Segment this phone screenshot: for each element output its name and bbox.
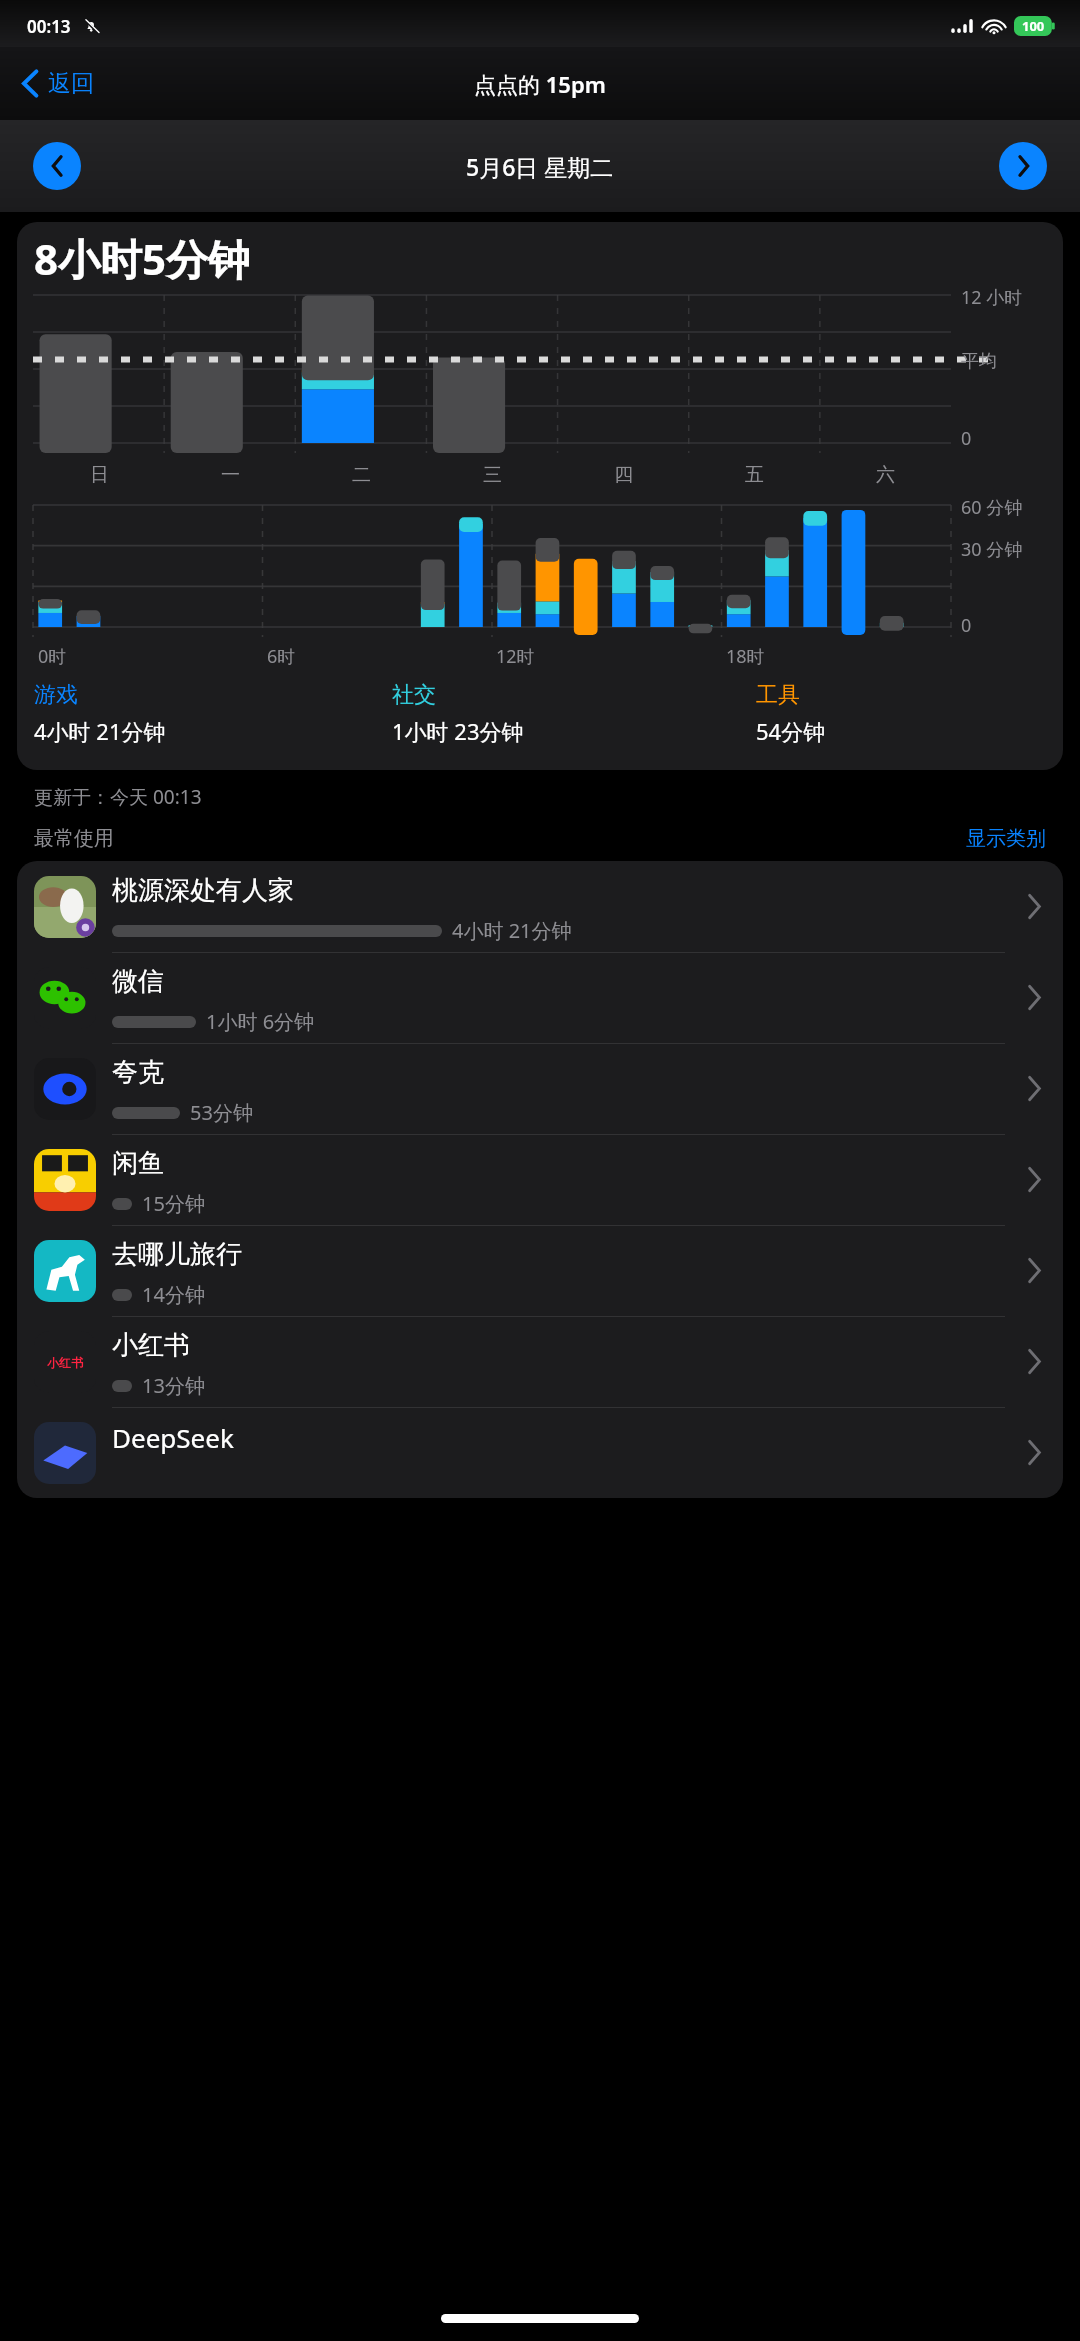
button[interactable]: Previous day xyxy=(33,142,81,190)
staticText: 游戏 xyxy=(34,681,78,709)
staticText: 6时 xyxy=(267,644,296,669)
staticText: 工具 xyxy=(756,681,800,709)
button[interactable]: 闲鱼 xyxy=(17,1134,1063,1225)
staticText: 12 小时 xyxy=(961,285,1023,310)
button[interactable]: Next day xyxy=(999,142,1047,190)
button[interactable]: DeepSeek xyxy=(17,1407,1063,1498)
button[interactable]: 工具 xyxy=(756,681,1046,746)
staticText: 六 xyxy=(876,463,895,487)
staticText: 30 分钟 xyxy=(961,537,1023,562)
staticText: 夸克 xyxy=(112,1056,164,1089)
staticText: 社交 xyxy=(392,681,436,709)
staticText: 13分钟 xyxy=(142,1372,205,1399)
staticText: 1小时 6分钟 xyxy=(206,1008,315,1035)
staticText: 0 xyxy=(961,613,972,638)
button[interactable]: 微信 xyxy=(17,952,1063,1043)
staticText: 00:13 xyxy=(27,15,71,38)
staticText: 53分钟 xyxy=(190,1099,253,1126)
staticText: 100 xyxy=(1022,17,1045,35)
staticText: 闲鱼 xyxy=(112,1147,164,1180)
button[interactable]: 桃源深处有人家 xyxy=(17,861,1063,952)
staticText: 60 分钟 xyxy=(961,495,1023,520)
staticText: 点点的 15pm xyxy=(474,69,606,99)
staticText: 12时 xyxy=(496,644,535,669)
staticText: 18时 xyxy=(726,644,765,669)
staticText: 14分钟 xyxy=(142,1281,205,1308)
staticText: 桃源深处有人家 xyxy=(112,874,294,907)
staticText: 一 xyxy=(221,463,240,487)
staticText: 更新于：今天 00:13 xyxy=(34,784,202,810)
button[interactable]: 夸克 xyxy=(17,1043,1063,1134)
staticText: 小红书 xyxy=(47,1355,83,1370)
button[interactable]: 游戏 xyxy=(34,681,392,746)
staticText: 15分钟 xyxy=(142,1190,205,1217)
staticText: 4小时 21分钟 xyxy=(452,917,572,944)
staticText: 5月6日 星期二 xyxy=(466,151,614,182)
staticText: 1小时 23分钟 xyxy=(392,716,524,746)
staticText: 8小时5分钟 xyxy=(34,230,251,287)
button[interactable]: 返回 xyxy=(14,61,102,106)
staticText: DeepSeek xyxy=(112,1420,234,1455)
staticText: 4小时 21分钟 xyxy=(34,716,166,746)
staticText: 最常使用 xyxy=(34,826,114,851)
staticText: 日 xyxy=(90,463,109,487)
staticText: 平均 xyxy=(961,350,997,373)
staticText: 返回 xyxy=(48,69,94,98)
staticText: 五 xyxy=(745,463,764,487)
button[interactable]: 去哪儿旅行 xyxy=(17,1225,1063,1316)
staticText: 微信 xyxy=(112,965,164,998)
staticText: 四 xyxy=(614,463,633,487)
staticText: 54分钟 xyxy=(756,716,826,746)
staticText: 二 xyxy=(352,463,371,487)
staticText: 0时 xyxy=(38,644,67,669)
staticText: 0 xyxy=(961,426,972,451)
staticText: 小红书 xyxy=(112,1329,190,1362)
staticText: 去哪儿旅行 xyxy=(112,1238,242,1271)
staticText: 三 xyxy=(483,463,502,487)
button[interactable]: 社交 xyxy=(392,681,756,746)
button[interactable]: 显示类别 xyxy=(966,826,1046,851)
staticText: 显示类别 xyxy=(966,826,1046,851)
button[interactable]: 小红书 xyxy=(17,1316,1063,1407)
